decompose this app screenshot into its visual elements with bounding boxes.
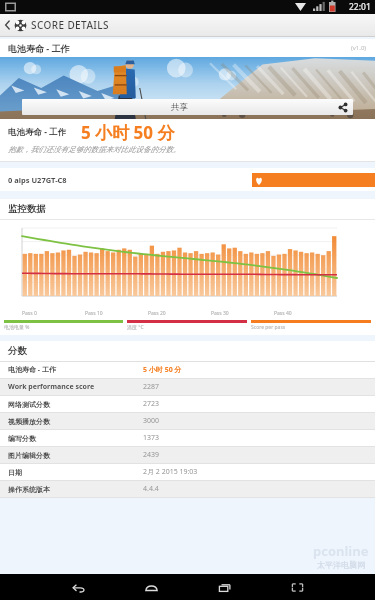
button[interactable]: Recent apps <box>211 574 237 600</box>
staticText: 监控数据 <box>8 203 46 215</box>
other: Share <box>338 102 348 113</box>
staticText: 5 小时 50 分 <box>143 365 182 375</box>
staticText: 5 小时 50 分 <box>81 121 175 144</box>
staticText: 电池寿命 - 工作 <box>8 126 67 138</box>
button[interactable]: 图片编辑分数 <box>0 447 375 463</box>
staticText: 电池寿命 - 工作 <box>8 42 70 54</box>
staticText: 2287 <box>143 382 160 392</box>
staticText: pconline <box>313 542 369 560</box>
button[interactable]: 日期 <box>0 464 375 480</box>
staticText: 操作系统版本 <box>8 485 50 494</box>
staticText: 0 alps U27GT-C8 <box>8 175 67 185</box>
button[interactable]: 电池寿命 - 工作 <box>0 362 375 378</box>
staticText: (v1.0) <box>351 44 367 52</box>
staticText: Pass 10 <box>85 310 148 317</box>
staticText: 共享 <box>171 102 188 113</box>
button[interactable]: Back <box>65 574 91 600</box>
button[interactable]: 共享 <box>22 99 353 115</box>
staticText: 日期 <box>8 468 22 477</box>
button[interactable]: 视频播放分数 <box>0 413 375 429</box>
staticText: 太平洋电脑网 <box>317 560 365 570</box>
staticText: 网络测试分数 <box>8 400 50 409</box>
button[interactable]: SCORE DETAILS <box>0 14 375 36</box>
staticText: 2723 <box>143 399 160 409</box>
staticText: 电池寿命 - 工作 <box>8 365 56 375</box>
button[interactable]: 0 alps U27GT-C8 <box>0 168 375 191</box>
staticText: Score per pass <box>251 324 286 331</box>
staticText: Pass 0 <box>22 310 85 317</box>
staticText: 图片编辑分数 <box>8 451 50 460</box>
button[interactable]: 操作系统版本 <box>0 481 375 497</box>
staticText: 3000 <box>143 416 160 426</box>
staticText: 温度 °C <box>127 324 144 331</box>
staticText: Pass 40 <box>274 310 337 317</box>
button[interactable]: Work performance score <box>0 379 375 395</box>
staticText: 2439 <box>143 450 160 460</box>
staticText: 视频播放分数 <box>8 417 50 426</box>
button[interactable]: Screenshot <box>284 574 310 600</box>
staticText: Pass 20 <box>148 310 211 317</box>
staticText: 编写分数 <box>8 434 36 443</box>
staticText: 4.4.4 <box>143 484 159 494</box>
button[interactable]: 网络测试分数 <box>0 396 375 412</box>
staticText: 分数 <box>8 345 27 357</box>
staticText: 22:01 <box>349 1 371 13</box>
staticText: 1373 <box>143 433 160 443</box>
staticText: 电池电量 % <box>4 324 30 331</box>
button[interactable]: 编写分数 <box>0 430 375 446</box>
staticText: 2月 2 2015 19:03 <box>143 467 198 477</box>
staticText: Work performance score <box>8 382 95 392</box>
staticText: SCORE DETAILS <box>31 18 109 32</box>
staticText: 抱歉，我们还没有足够的数据来对比此设备的分数。 <box>8 145 181 154</box>
button[interactable]: Home <box>138 574 164 600</box>
staticText: Pass 30 <box>211 310 274 317</box>
